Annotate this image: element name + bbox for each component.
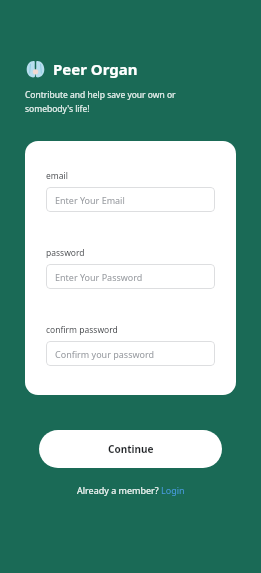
staticText: email xyxy=(46,170,68,182)
staticText: Already a member? Login xyxy=(77,484,185,496)
button[interactable]: Enter Your Password xyxy=(46,264,215,289)
button[interactable]: Continue xyxy=(39,430,222,468)
staticText: Enter Your Password xyxy=(55,271,143,283)
staticText: confirm password xyxy=(46,324,118,336)
button[interactable]: Already a member? Login xyxy=(77,484,185,496)
staticText: Continue xyxy=(108,442,154,456)
staticText: Peer Organ xyxy=(53,59,138,79)
button[interactable]: Enter Your Email xyxy=(46,187,215,212)
staticText: Contribute and help save your own or som… xyxy=(25,89,176,114)
button[interactable]: Confirm your password xyxy=(46,341,215,366)
staticText: Confirm your password xyxy=(55,348,155,360)
staticText: Enter Your Email xyxy=(55,194,125,206)
staticText: password xyxy=(46,247,85,259)
